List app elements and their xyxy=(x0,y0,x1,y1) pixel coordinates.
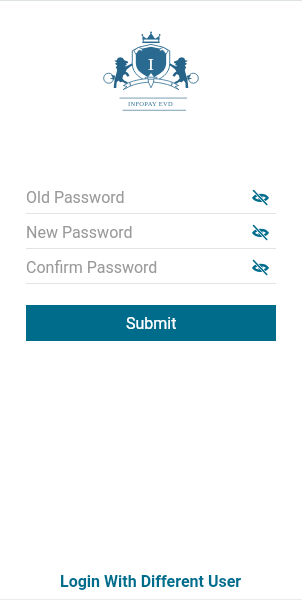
staticText: Confirm Password xyxy=(26,258,158,277)
button[interactable]: Login With Different User xyxy=(0,564,302,598)
button[interactable]: Toggle password visibility xyxy=(249,256,271,278)
staticText: New Password xyxy=(26,223,133,242)
staticText: Submit xyxy=(126,314,177,333)
staticText: Old Password xyxy=(26,188,125,207)
button[interactable]: Toggle password visibility xyxy=(249,221,271,243)
staticText: Login With Different User xyxy=(60,572,242,591)
staticText: I xyxy=(148,55,154,74)
button[interactable]: Toggle password visibility xyxy=(249,186,271,208)
staticText: INFOPAY EVD xyxy=(128,100,174,107)
button[interactable]: Submit xyxy=(26,305,276,341)
